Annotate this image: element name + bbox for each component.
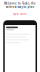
- staticText: calmest way to plan: [5, 5, 34, 9]
- button[interactable]: App Store: [0, 12, 40, 15]
- staticText: App Store: [13, 12, 27, 15]
- staticText: Welcome to Tasks, the: [4, 2, 36, 5]
